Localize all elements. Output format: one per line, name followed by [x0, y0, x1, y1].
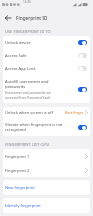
button[interactable]: Vibrate when fingerprint is not recogniz…	[3, 118, 90, 136]
staticText: FINGERPRINT LIST (2/5)	[5, 142, 50, 147]
button[interactable]: Access Safe	[3, 49, 90, 62]
button[interactable]: New fingerprint	[3, 180, 90, 195]
staticText: Fingerprint 1	[5, 154, 30, 159]
staticText: 14:36	[23, 0, 31, 4]
staticText: Identify fingerprint	[5, 203, 41, 208]
staticText: New fingerprint	[5, 185, 35, 190]
button[interactable]: Toggle	[78, 87, 87, 92]
button[interactable]: Unlock device	[3, 36, 90, 49]
button[interactable]: Toggle	[78, 66, 87, 71]
button[interactable]: Unlock when screen is off	[3, 107, 90, 118]
button[interactable]: Identify fingerprint	[3, 198, 90, 213]
staticText: Fingerprint ID	[16, 15, 48, 21]
button[interactable]: Autofill usernames and passwords	[3, 75, 90, 103]
button[interactable]: Toggle	[78, 53, 87, 58]
button[interactable]: Toggle	[78, 125, 87, 130]
staticText: Access App Lock	[5, 66, 36, 71]
staticText: Vibrate when fingerprint is not recogniz…	[5, 122, 63, 133]
staticText: Unlock device	[5, 40, 31, 45]
staticText: Fingerprint 2	[5, 168, 30, 173]
button[interactable]: Back	[0, 10, 16, 26]
staticText: USE FINGERPRINT ID TO	[5, 29, 51, 34]
staticText: Rest finger	[65, 110, 84, 115]
button[interactable]: Fingerprint 1	[3, 149, 90, 163]
button[interactable]: Toggle	[78, 40, 87, 45]
staticText: Unlock when screen is off	[5, 110, 53, 115]
staticText: Autofill usernames and passwords	[5, 79, 49, 90]
staticText: Usernames and passwords are accessed fro…	[5, 91, 52, 99]
staticText: Access Safe	[5, 53, 27, 58]
button[interactable]: Fingerprint 2	[3, 163, 90, 177]
button[interactable]: Access App Lock	[3, 62, 90, 75]
